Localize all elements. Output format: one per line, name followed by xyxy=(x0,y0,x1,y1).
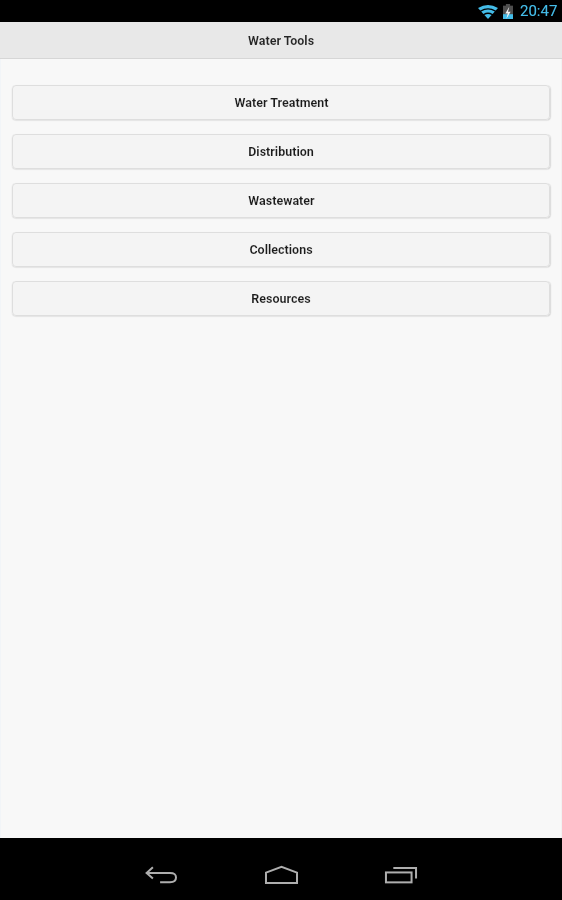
button[interactable]: Wastewater xyxy=(12,183,550,218)
button[interactable]: Home xyxy=(221,838,341,900)
button[interactable]: Recent apps xyxy=(341,838,461,900)
staticText: Water Tools xyxy=(248,33,315,48)
staticText: Collections xyxy=(249,242,313,257)
button[interactable]: Distribution xyxy=(12,134,550,169)
staticText: Resources xyxy=(251,291,311,306)
staticText: Distribution xyxy=(248,144,314,159)
button[interactable]: Back xyxy=(101,838,221,900)
button[interactable]: Resources xyxy=(12,281,550,316)
staticText: Wastewater xyxy=(248,193,315,208)
staticText: Water Treatment xyxy=(234,95,329,110)
button[interactable]: Collections xyxy=(12,232,550,267)
button[interactable]: Water Treatment xyxy=(12,85,550,120)
staticText: 20:47 xyxy=(520,2,558,20)
